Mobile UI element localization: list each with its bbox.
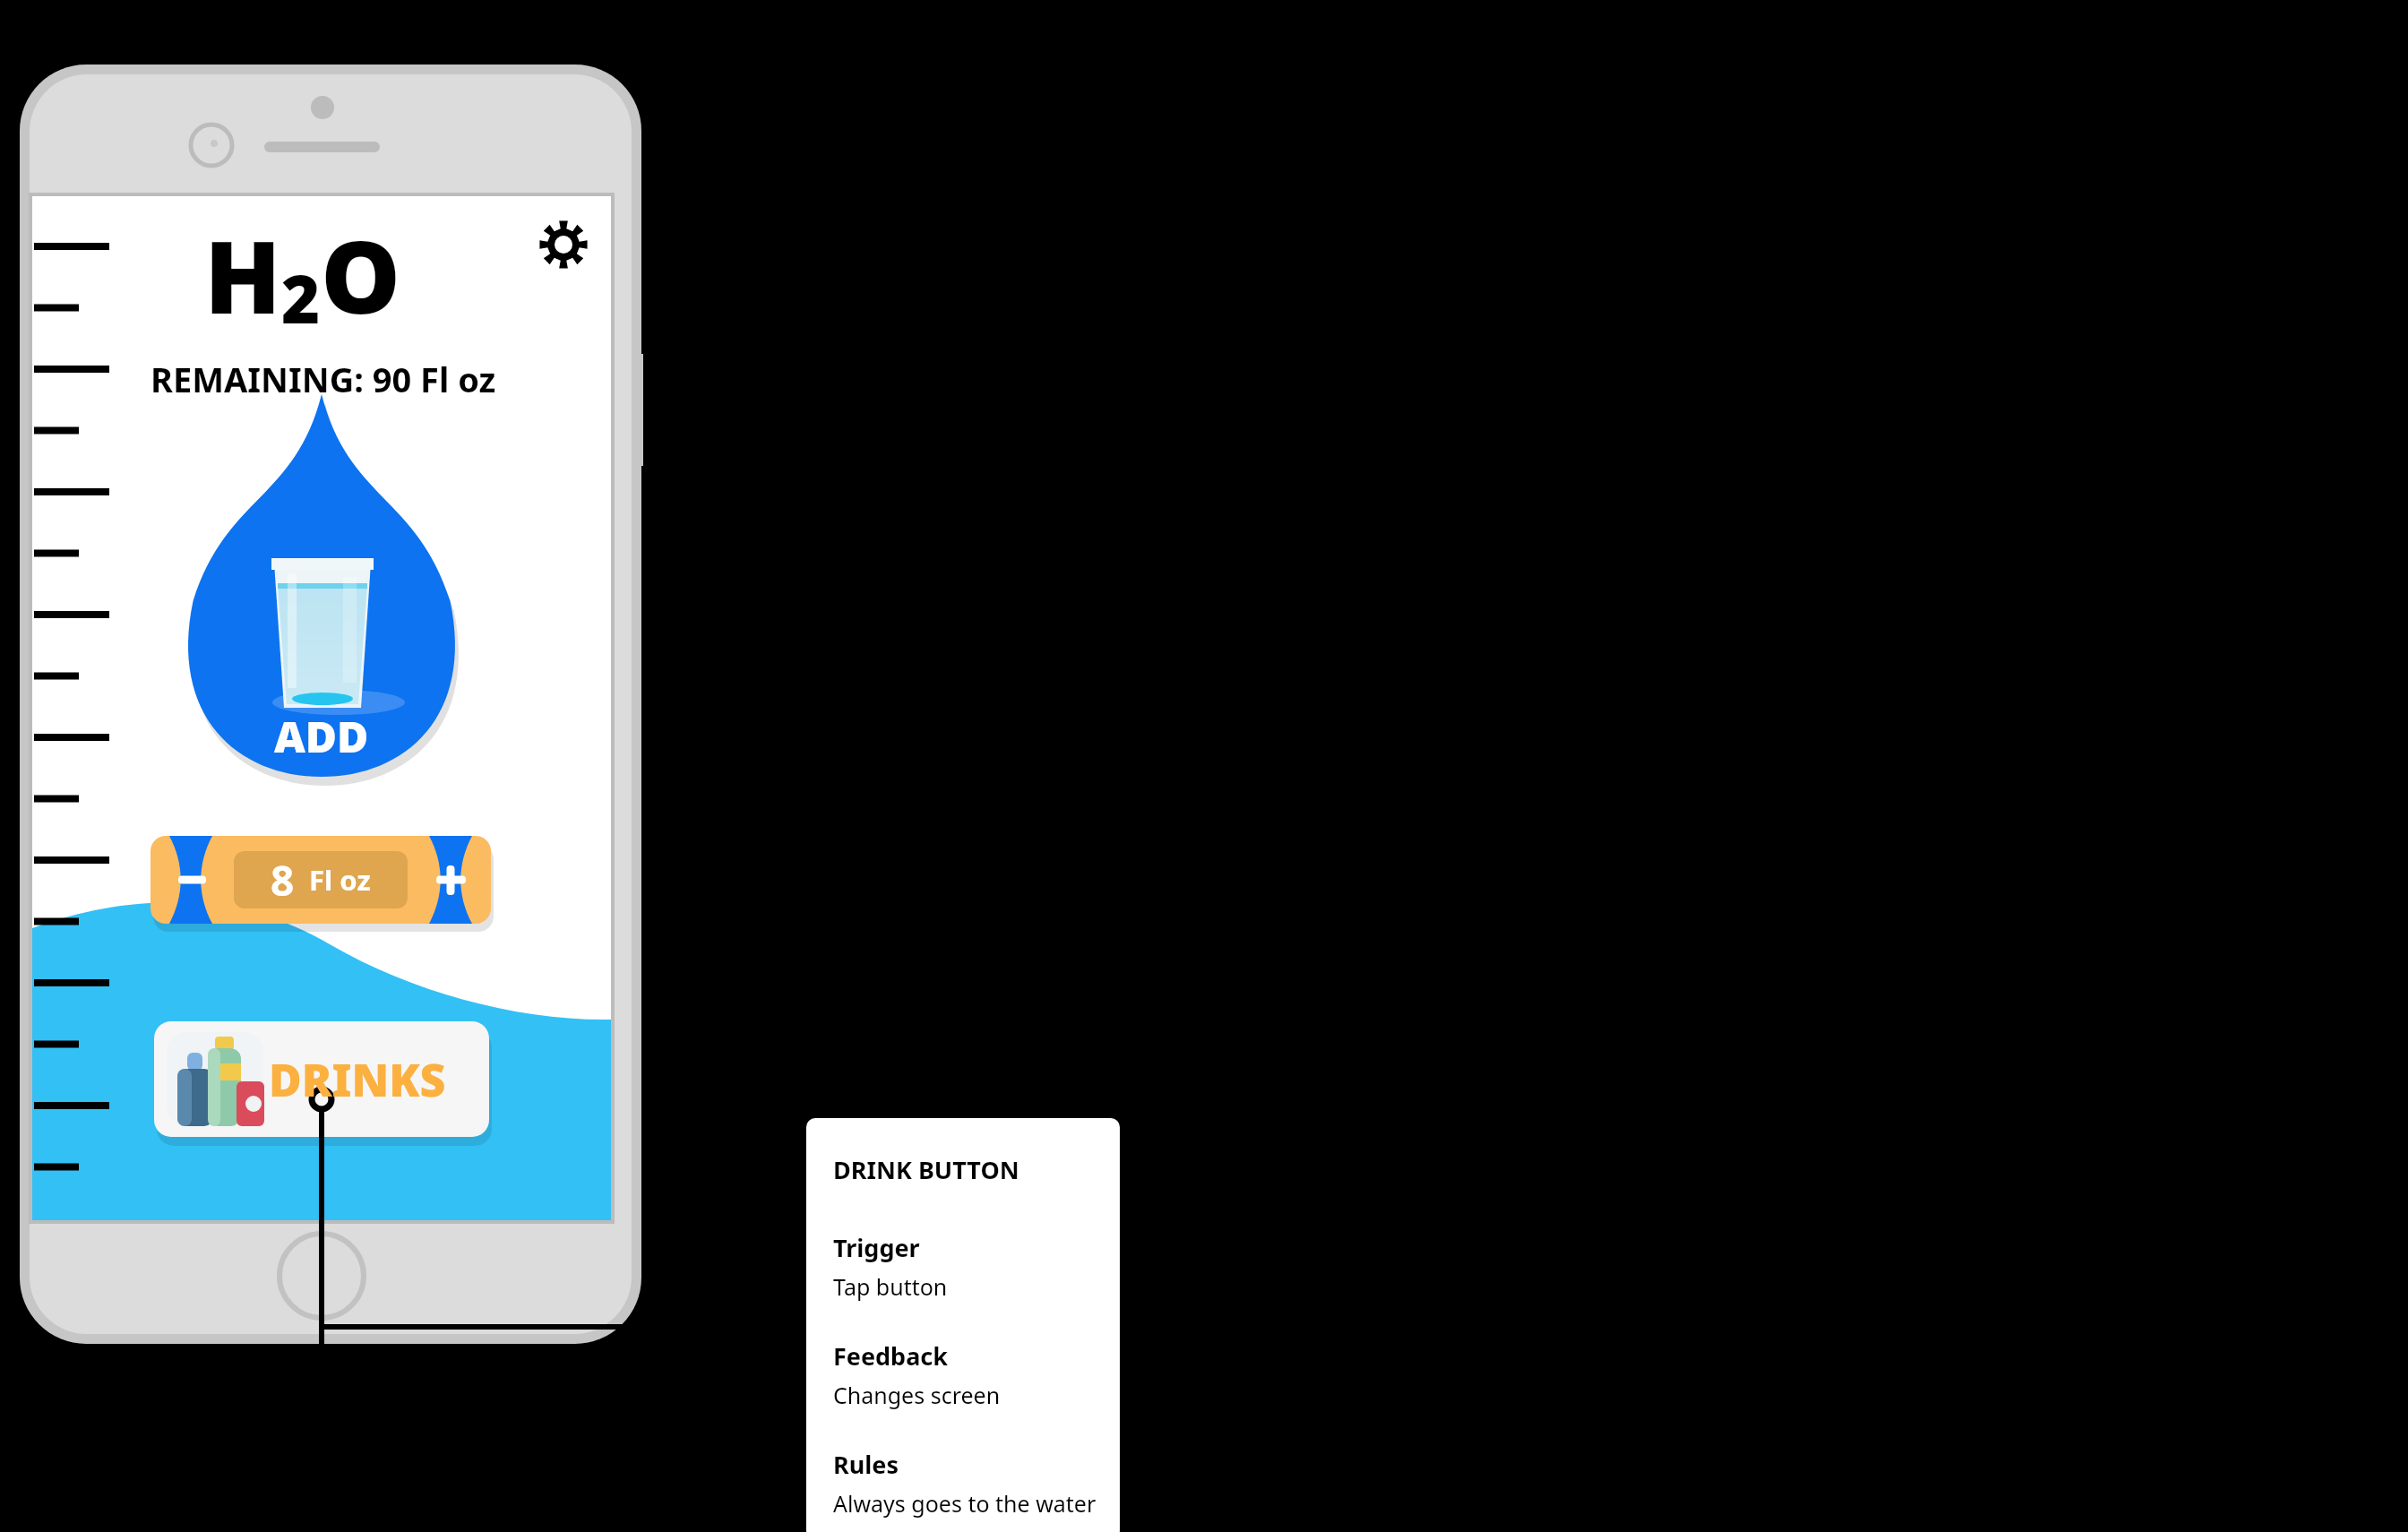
staticText: Rules (833, 1448, 899, 1481)
staticText: Tap button (833, 1271, 948, 1302)
staticText: Changes screen (833, 1380, 1001, 1410)
staticText: Always goes to the water (833, 1488, 1096, 1519)
button[interactable]: Decrease amount (150, 836, 249, 924)
staticText: 8 (271, 852, 295, 908)
button[interactable]: Increase amount (392, 836, 491, 924)
button[interactable]: Settings (534, 215, 593, 274)
staticText: H (204, 206, 281, 343)
staticText: REMAINING: 90 Fl oz (150, 356, 496, 402)
staticText: Fl oz (309, 861, 371, 899)
staticText: 2 (281, 253, 321, 343)
button[interactable]: 8 (234, 851, 408, 908)
staticText: DRINK BUTTON (833, 1153, 1019, 1186)
button[interactable]: ADD (184, 394, 460, 788)
staticText: DRINKS (269, 1049, 446, 1110)
staticText: O (321, 206, 401, 343)
button[interactable]: DRINKS (154, 1021, 489, 1137)
staticText: Trigger (833, 1231, 920, 1264)
staticText: ADD (274, 707, 369, 765)
staticText: Feedback (833, 1339, 949, 1373)
